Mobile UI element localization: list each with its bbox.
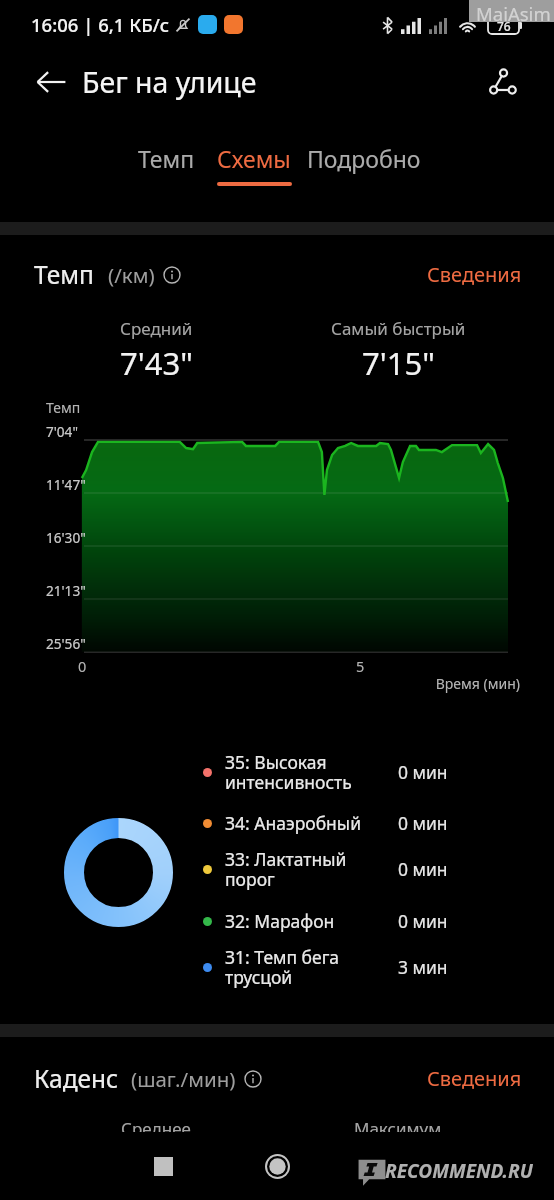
staticText: 11'47" xyxy=(46,475,86,494)
button[interactable]: Home xyxy=(246,1132,308,1200)
button[interactable]: З1: Темп бега трусцой xyxy=(203,945,448,989)
staticText: Время (мин) xyxy=(0,674,520,693)
staticText: (шаг./мин) xyxy=(131,1065,236,1093)
staticText: 76 xyxy=(497,18,511,34)
staticText: Самый быстрый xyxy=(331,317,466,340)
staticText: MaiAsim xyxy=(476,1,551,26)
staticText: 7'04" xyxy=(46,422,78,441)
staticText: З4: Анаэробный xyxy=(225,811,377,835)
staticText: Темп xyxy=(46,398,81,417)
staticText: 0 мин xyxy=(398,811,448,835)
staticText: 7'15" xyxy=(362,342,435,384)
staticText: 3 мин xyxy=(398,955,448,979)
button[interactable]: Back xyxy=(360,1132,422,1200)
button[interactable]: Схемы xyxy=(190,143,318,193)
staticText: З2: Марафон xyxy=(225,909,377,933)
staticText: RECOMMEND.RU xyxy=(385,1158,533,1184)
staticText: 0 мин xyxy=(398,857,448,881)
staticText: Темп xyxy=(138,143,195,174)
button[interactable]: З4: Анаэробный xyxy=(203,810,448,836)
button[interactable]: Сведения xyxy=(421,255,528,294)
staticText: 0 мин xyxy=(398,909,448,933)
button[interactable]: Recents xyxy=(132,1132,194,1200)
button[interactable]: Share xyxy=(473,53,531,111)
button[interactable]: Темп xyxy=(102,143,230,193)
staticText: З3: Лактатный порог xyxy=(225,847,377,891)
other: Info xyxy=(163,266,181,284)
button[interactable]: З2: Марафон xyxy=(203,908,448,934)
staticText: Бег на улице xyxy=(82,63,257,102)
button[interactable]: Подробно xyxy=(300,143,428,193)
staticText: Каденс xyxy=(34,1062,119,1095)
staticText: Среднее xyxy=(121,1117,191,1140)
staticText: 16:06 | 6,1 КБ/с xyxy=(31,12,170,37)
staticText: 25'56" xyxy=(46,634,86,653)
staticText: 0 xyxy=(78,656,87,676)
staticText: (/км) xyxy=(108,261,155,289)
button[interactable]: Back xyxy=(24,55,78,109)
staticText: 16'30" xyxy=(46,528,86,547)
other: Info xyxy=(244,1070,262,1088)
staticText: Сведения xyxy=(427,1065,522,1092)
staticText: 7'43" xyxy=(120,342,193,384)
staticText: Темп xyxy=(34,258,94,291)
staticText: Максимум xyxy=(354,1117,442,1140)
staticText: Схемы xyxy=(217,143,291,174)
staticText: З1: Темп бега трусцой xyxy=(225,945,377,989)
staticText: З5: Высокая интенсивность xyxy=(225,750,377,794)
button[interactable]: З5: Высокая интенсивность xyxy=(203,750,448,794)
staticText: Средний xyxy=(120,317,193,340)
staticText: Сведения xyxy=(427,261,522,288)
staticText: 5 xyxy=(356,656,365,676)
staticText: 0 мин xyxy=(398,760,448,784)
staticText: Подробно xyxy=(307,143,421,174)
button[interactable]: Сведения xyxy=(421,1059,528,1098)
staticText: 21'13" xyxy=(46,581,86,600)
button[interactable]: З3: Лактатный порог xyxy=(203,847,448,891)
